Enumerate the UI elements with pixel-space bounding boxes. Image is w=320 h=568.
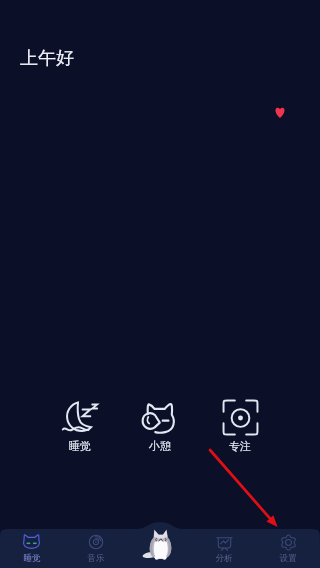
button[interactable]: 设置 bbox=[256, 529, 320, 568]
staticText: 小憩 bbox=[128, 439, 192, 453]
staticText: 分析 bbox=[192, 553, 256, 564]
button[interactable]: 睡觉 bbox=[0, 529, 64, 568]
button[interactable]: 睡觉 bbox=[48, 396, 112, 454]
button[interactable]: 专注 bbox=[208, 396, 272, 454]
button[interactable]: Sleep cat bbox=[141, 527, 177, 560]
staticText: 上午好 bbox=[20, 47, 74, 70]
button[interactable]: Favorite bbox=[268, 100, 292, 124]
staticText: 睡觉 bbox=[0, 553, 64, 564]
staticText: 睡觉 bbox=[48, 439, 112, 453]
button[interactable]: 小憩 bbox=[128, 396, 192, 454]
button[interactable]: 分析 bbox=[192, 529, 256, 568]
staticText: 专注 bbox=[208, 439, 272, 453]
staticText: 音乐 bbox=[64, 553, 128, 564]
button[interactable]: 音乐 bbox=[64, 529, 128, 568]
staticText: 设置 bbox=[256, 553, 320, 564]
